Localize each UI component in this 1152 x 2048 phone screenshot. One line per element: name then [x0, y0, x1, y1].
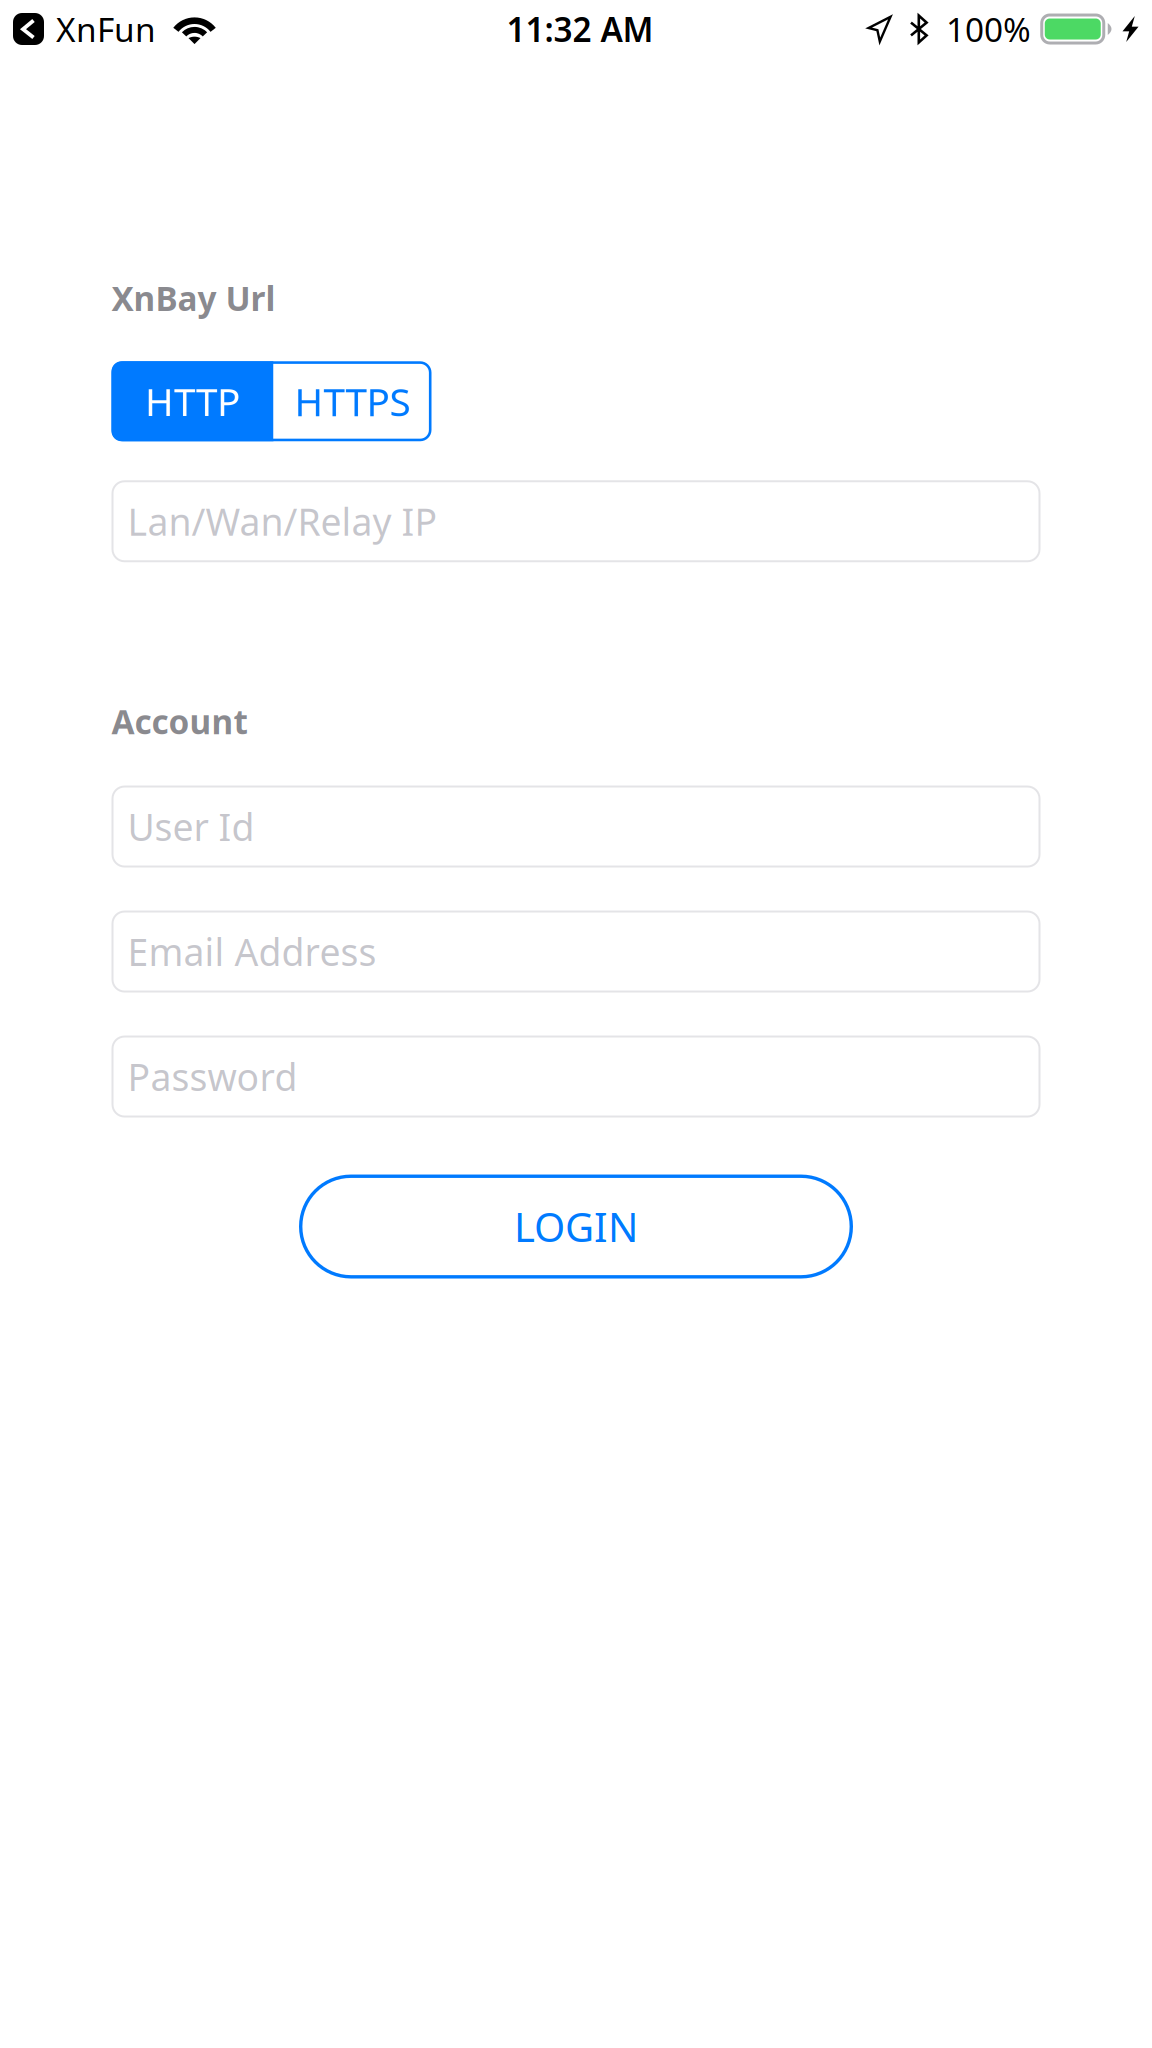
button[interactable]: HTTPS	[273, 361, 431, 441]
button[interactable]: Email Address	[111, 910, 1040, 992]
staticText: 11:32 AM	[506, 7, 653, 51]
staticText: User Id	[127, 802, 254, 851]
staticText: Email Address	[127, 927, 376, 976]
staticText: XnBay Url	[111, 276, 275, 320]
staticText: Lan/Wan/Relay IP	[127, 496, 437, 546]
button[interactable]: LOGIN	[299, 1174, 853, 1278]
staticText: HTTPS	[294, 376, 410, 427]
button[interactable]: Password	[111, 1035, 1040, 1117]
staticText: XnFun	[56, 7, 156, 51]
staticText: HTTP	[145, 376, 240, 427]
button[interactable]: User Id	[111, 785, 1040, 867]
staticText: Account	[111, 699, 247, 744]
staticText: LOGIN	[514, 1200, 638, 1253]
button[interactable]: Lan/Wan/Relay IP	[111, 480, 1040, 562]
button[interactable]: Back to XnFun	[0, 7, 156, 51]
staticText: 100%	[946, 7, 1031, 51]
button[interactable]: HTTP	[111, 361, 273, 441]
staticText: Password	[127, 1052, 297, 1101]
